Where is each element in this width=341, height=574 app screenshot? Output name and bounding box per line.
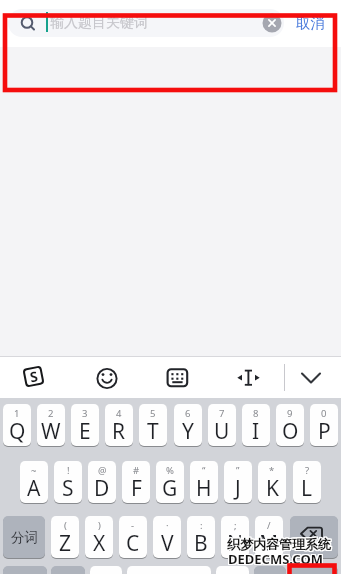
- staticText: /: [267, 519, 271, 532]
- staticText: 分词: [11, 529, 38, 546]
- button[interactable]: #: [122, 461, 150, 503]
- button[interactable]: [8, 9, 284, 37]
- staticText: E: [79, 417, 91, 446]
- staticText: 织梦内容管理系统: [227, 537, 331, 553]
- staticText: S: [28, 366, 40, 386]
- button[interactable]: [298, 366, 324, 389]
- staticText: ): [98, 519, 101, 532]
- staticText: A: [27, 474, 41, 503]
- staticText: ”: [236, 464, 240, 477]
- button[interactable]: [262, 13, 282, 33]
- button[interactable]: 1: [3, 404, 31, 446]
- staticText: 0: [321, 407, 327, 420]
- button[interactable]: [165, 366, 190, 391]
- staticText: 输入题目关键词: [50, 14, 148, 32]
- staticText: 取消: [296, 14, 325, 32]
- button[interactable]: S: [22, 365, 45, 388]
- button[interactable]: [3, 566, 47, 574]
- staticText: 8: [253, 407, 259, 420]
- staticText: 9: [287, 407, 293, 420]
- staticText: N: [227, 529, 243, 558]
- staticText: D: [94, 474, 110, 503]
- button[interactable]: [291, 566, 338, 574]
- button[interactable]: 2: [37, 404, 65, 446]
- button[interactable]: 5: [139, 404, 167, 446]
- button[interactable]: ~: [20, 461, 48, 503]
- staticText: DEDECMS.COM: [228, 549, 323, 567]
- staticText: 1: [14, 407, 20, 420]
- staticText: J: [235, 474, 241, 503]
- staticText: 织梦内容管理系统: [227, 535, 331, 551]
- button[interactable]: %: [156, 461, 184, 503]
- button[interactable]: 3: [71, 404, 99, 446]
- staticText: DEDECMS.COM: [228, 551, 323, 569]
- button[interactable]: [216, 566, 249, 574]
- button[interactable]: 9: [276, 404, 304, 446]
- button[interactable]: (: [51, 516, 79, 558]
- staticText: L: [301, 474, 313, 503]
- button[interactable]: “: [190, 461, 218, 503]
- button[interactable]: 4: [105, 404, 133, 446]
- staticText: ;: [234, 519, 237, 532]
- staticText: O: [282, 417, 299, 446]
- staticText: #: [133, 464, 140, 477]
- staticText: 织梦内容管理系统: [227, 536, 331, 552]
- button[interactable]: 6: [174, 404, 202, 446]
- staticText: :: [200, 519, 203, 532]
- staticText: 6: [185, 407, 191, 420]
- button[interactable]: !: [54, 461, 82, 503]
- staticText: 4: [116, 407, 122, 420]
- button[interactable]: ;: [221, 516, 249, 558]
- staticText: ?: [305, 464, 310, 477]
- button[interactable]: [95, 366, 120, 391]
- button[interactable]: 0: [310, 404, 338, 446]
- staticText: V: [161, 529, 174, 558]
- button[interactable]: *: [258, 461, 286, 503]
- button[interactable]: /: [255, 516, 283, 558]
- button[interactable]: ·: [153, 516, 181, 558]
- button[interactable]: 分词: [3, 516, 45, 558]
- button[interactable]: [254, 566, 286, 574]
- staticText: DEDECMS.COM: [228, 550, 323, 568]
- button[interactable]: 7: [208, 404, 236, 446]
- button[interactable]: @: [88, 461, 116, 503]
- staticText: “: [202, 464, 206, 477]
- staticText: 织梦内容管理系统: [226, 535, 330, 551]
- staticText: 7: [219, 407, 225, 420]
- staticText: W: [41, 417, 61, 446]
- staticText: 织梦内容管理系统: [226, 536, 330, 552]
- staticText: !: [67, 464, 70, 477]
- staticText: B: [194, 529, 208, 558]
- button[interactable]: [90, 566, 122, 574]
- staticText: S: [62, 474, 74, 503]
- staticText: Y: [182, 417, 194, 446]
- staticText: 织梦内容管理系统: [228, 535, 332, 551]
- staticText: @: [98, 464, 107, 477]
- button[interactable]: 取消: [290, 9, 330, 37]
- button[interactable]: ”: [224, 461, 252, 503]
- staticText: 5: [150, 407, 156, 420]
- staticText: X: [93, 529, 106, 558]
- staticText: C: [126, 529, 140, 558]
- button[interactable]: :: [187, 516, 215, 558]
- button[interactable]: [51, 566, 85, 574]
- button[interactable]: [236, 366, 261, 391]
- staticText: 织梦内容管理系统: [228, 536, 332, 552]
- staticText: 织梦内容管理系统: [226, 537, 330, 553]
- staticText: Q: [9, 417, 26, 446]
- staticText: DEDECMS.COM: [227, 551, 322, 569]
- button[interactable]: ): [85, 516, 113, 558]
- staticText: DEDECMS.COM: [229, 550, 324, 568]
- staticText: U: [214, 417, 230, 446]
- staticText: DEDECMS.COM: [229, 549, 324, 567]
- staticText: ·: [166, 519, 169, 532]
- button[interactable]: 8: [242, 404, 270, 446]
- staticText: K: [266, 474, 279, 503]
- staticText: DEDECMS.COM: [227, 550, 322, 568]
- button[interactable]: ?: [293, 461, 321, 503]
- staticText: I: [252, 417, 260, 446]
- button[interactable]: -: [119, 516, 147, 558]
- button[interactable]: [127, 566, 211, 574]
- staticText: F: [131, 474, 142, 503]
- button[interactable]: [290, 516, 338, 558]
